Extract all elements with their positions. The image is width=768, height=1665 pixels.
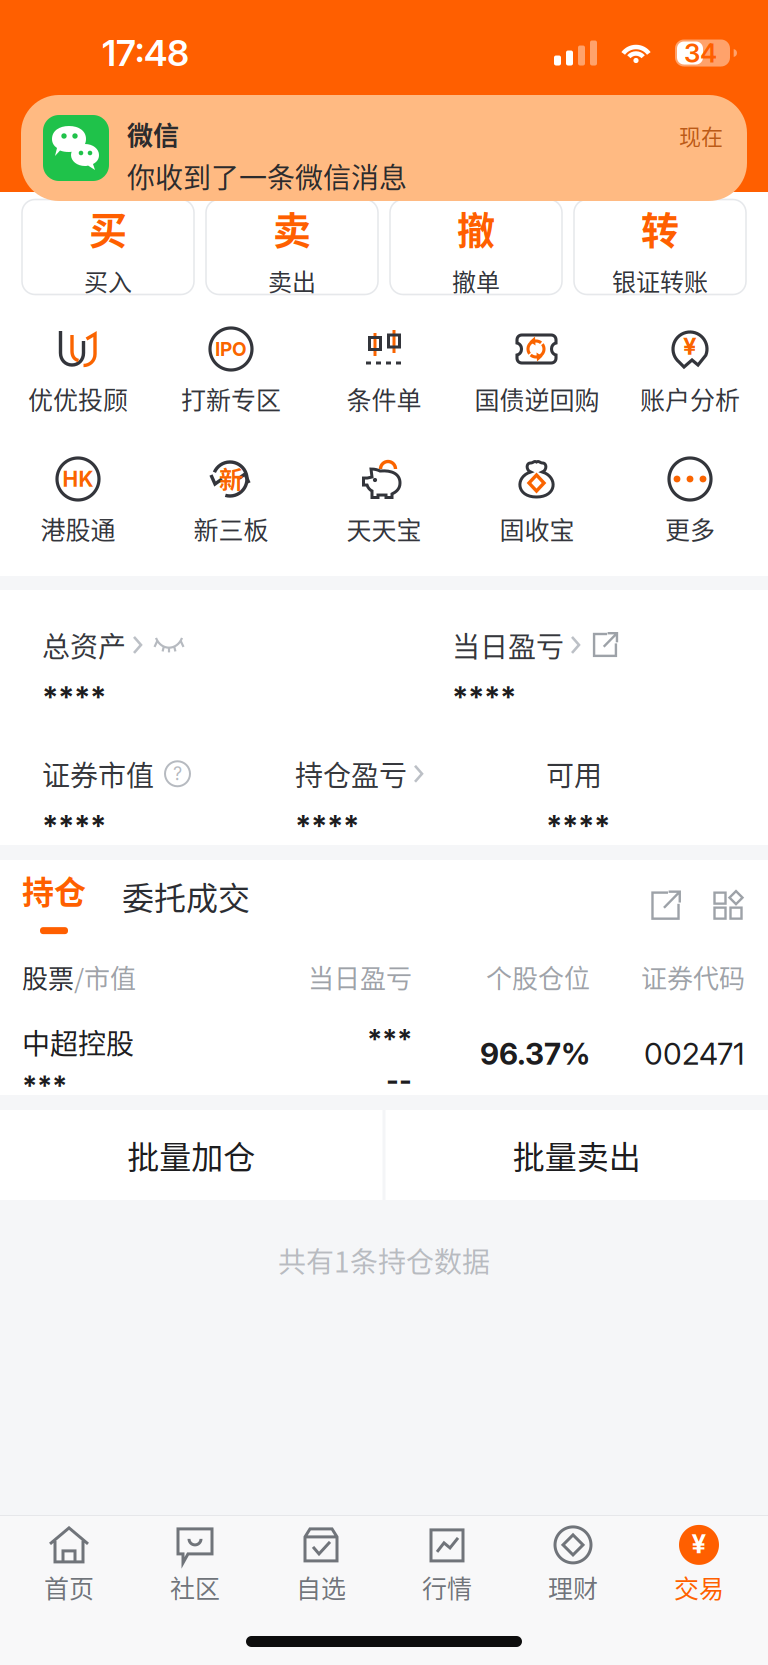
staticText: 持仓: [22, 867, 86, 913]
staticText: 天天宝: [346, 510, 421, 547]
staticText: 当日盈亏: [308, 958, 412, 996]
staticText: --: [386, 1064, 412, 1098]
staticText: 优优投顾: [28, 380, 128, 417]
button[interactable]: 当日盈亏: [452, 625, 618, 715]
staticText: 持仓盈亏: [295, 753, 407, 794]
button[interactable]: ¥: [613, 318, 766, 448]
staticText: 17:48: [102, 31, 189, 75]
button[interactable]: 天天宝: [307, 448, 460, 578]
staticText: 撤单: [452, 263, 500, 298]
button[interactable]: 社区: [132, 1525, 258, 1613]
button[interactable]: 切换视图: [681, 890, 744, 934]
staticText: 当日盈亏: [452, 625, 564, 665]
button[interactable]: 批量加仓: [0, 1110, 382, 1200]
staticText: 你收到了一条微信消息: [127, 156, 407, 196]
button[interactable]: IPO: [154, 318, 307, 448]
staticText: ****: [42, 808, 106, 844]
staticText: ?: [173, 763, 182, 785]
staticText: 更多: [665, 510, 715, 547]
button[interactable]: 优优投顾: [1, 318, 154, 448]
button[interactable]: 撤: [390, 199, 562, 294]
button[interactable]: 新: [154, 448, 307, 578]
staticText: ¥: [683, 331, 697, 360]
staticText: ***: [367, 1022, 412, 1056]
staticText: IPO: [215, 337, 247, 360]
button[interactable]: 持仓: [22, 867, 86, 934]
staticText: ¥: [691, 1528, 706, 1560]
button[interactable]: ¥: [636, 1525, 762, 1613]
staticText: ****: [42, 679, 106, 715]
button[interactable]: HK: [1, 448, 154, 578]
staticText: 微信: [127, 115, 179, 153]
staticText: 条件单: [346, 380, 421, 417]
staticText: 证券市值: [42, 753, 154, 794]
button[interactable]: 买: [22, 199, 194, 294]
staticText: 固收宝: [499, 510, 574, 547]
staticText: 银证转账: [612, 263, 708, 298]
button[interactable]: 委托成交: [86, 873, 250, 934]
staticText: 新: [219, 461, 243, 495]
staticText: 国债逆回购: [474, 380, 599, 417]
button[interactable]: 转: [574, 199, 746, 294]
staticText: ****: [546, 808, 610, 844]
staticText: 证券代码: [641, 958, 745, 996]
button[interactable]: 总资产: [42, 625, 452, 715]
staticText: 首页: [44, 1569, 94, 1605]
button[interactable]: 行情: [384, 1525, 510, 1613]
button[interactable]: 固收宝: [460, 448, 613, 578]
staticText: 总资产: [42, 625, 126, 665]
staticText: 股票: [22, 958, 74, 996]
staticText: 转: [641, 200, 679, 255]
button[interactable]: 卖: [206, 199, 378, 294]
staticText: 002471: [644, 1036, 745, 1072]
staticText: 新三板: [193, 510, 268, 547]
button[interactable]: 证券市值: [42, 753, 295, 844]
staticText: 账户分析: [640, 380, 740, 417]
staticText: 34: [684, 37, 717, 69]
staticText: /市值: [74, 958, 136, 996]
staticText: 买: [89, 200, 127, 255]
staticText: 买入: [84, 263, 132, 298]
staticText: 委托成交: [122, 873, 250, 919]
staticText: 打新专区: [181, 380, 281, 417]
staticText: ****: [295, 808, 359, 844]
button[interactable]: 批量卖出: [385, 1110, 768, 1200]
staticText: 卖: [273, 200, 311, 255]
staticText: 社区: [170, 1569, 220, 1605]
button[interactable]: 理财: [510, 1525, 636, 1613]
staticText: 自选: [296, 1569, 346, 1605]
button[interactable]: 首页: [6, 1525, 132, 1613]
staticText: ***: [22, 1068, 67, 1102]
staticText: 96.37%: [480, 1036, 590, 1072]
button[interactable]: 中超控股: [0, 996, 768, 1102]
staticText: HK: [62, 466, 93, 492]
button[interactable]: 国债逆回购: [460, 318, 613, 448]
staticText: 中超控股: [22, 1022, 134, 1062]
staticText: 行情: [422, 1569, 472, 1605]
staticText: 批量加仓: [127, 1132, 255, 1178]
staticText: 理财: [548, 1569, 598, 1605]
staticText: 港股通: [40, 510, 115, 547]
staticText: 共有1条持仓数据: [278, 1240, 490, 1280]
button[interactable]: 持仓盈亏: [295, 753, 546, 844]
button[interactable]: 自选: [258, 1525, 384, 1613]
button[interactable]: 更多: [613, 448, 766, 578]
staticText: 可用: [546, 753, 602, 794]
staticText: 个股仓位: [486, 958, 590, 996]
button[interactable]: 微信: [21, 95, 747, 201]
staticText: ****: [452, 679, 516, 715]
button[interactable]: 条件单: [307, 318, 460, 448]
staticText: 卖出: [268, 263, 316, 298]
button[interactable]: 分享: [650, 890, 681, 934]
staticText: 现在: [679, 119, 723, 151]
staticText: 批量卖出: [513, 1132, 641, 1178]
staticText: 撤: [457, 200, 495, 255]
staticText: 交易: [674, 1569, 724, 1605]
